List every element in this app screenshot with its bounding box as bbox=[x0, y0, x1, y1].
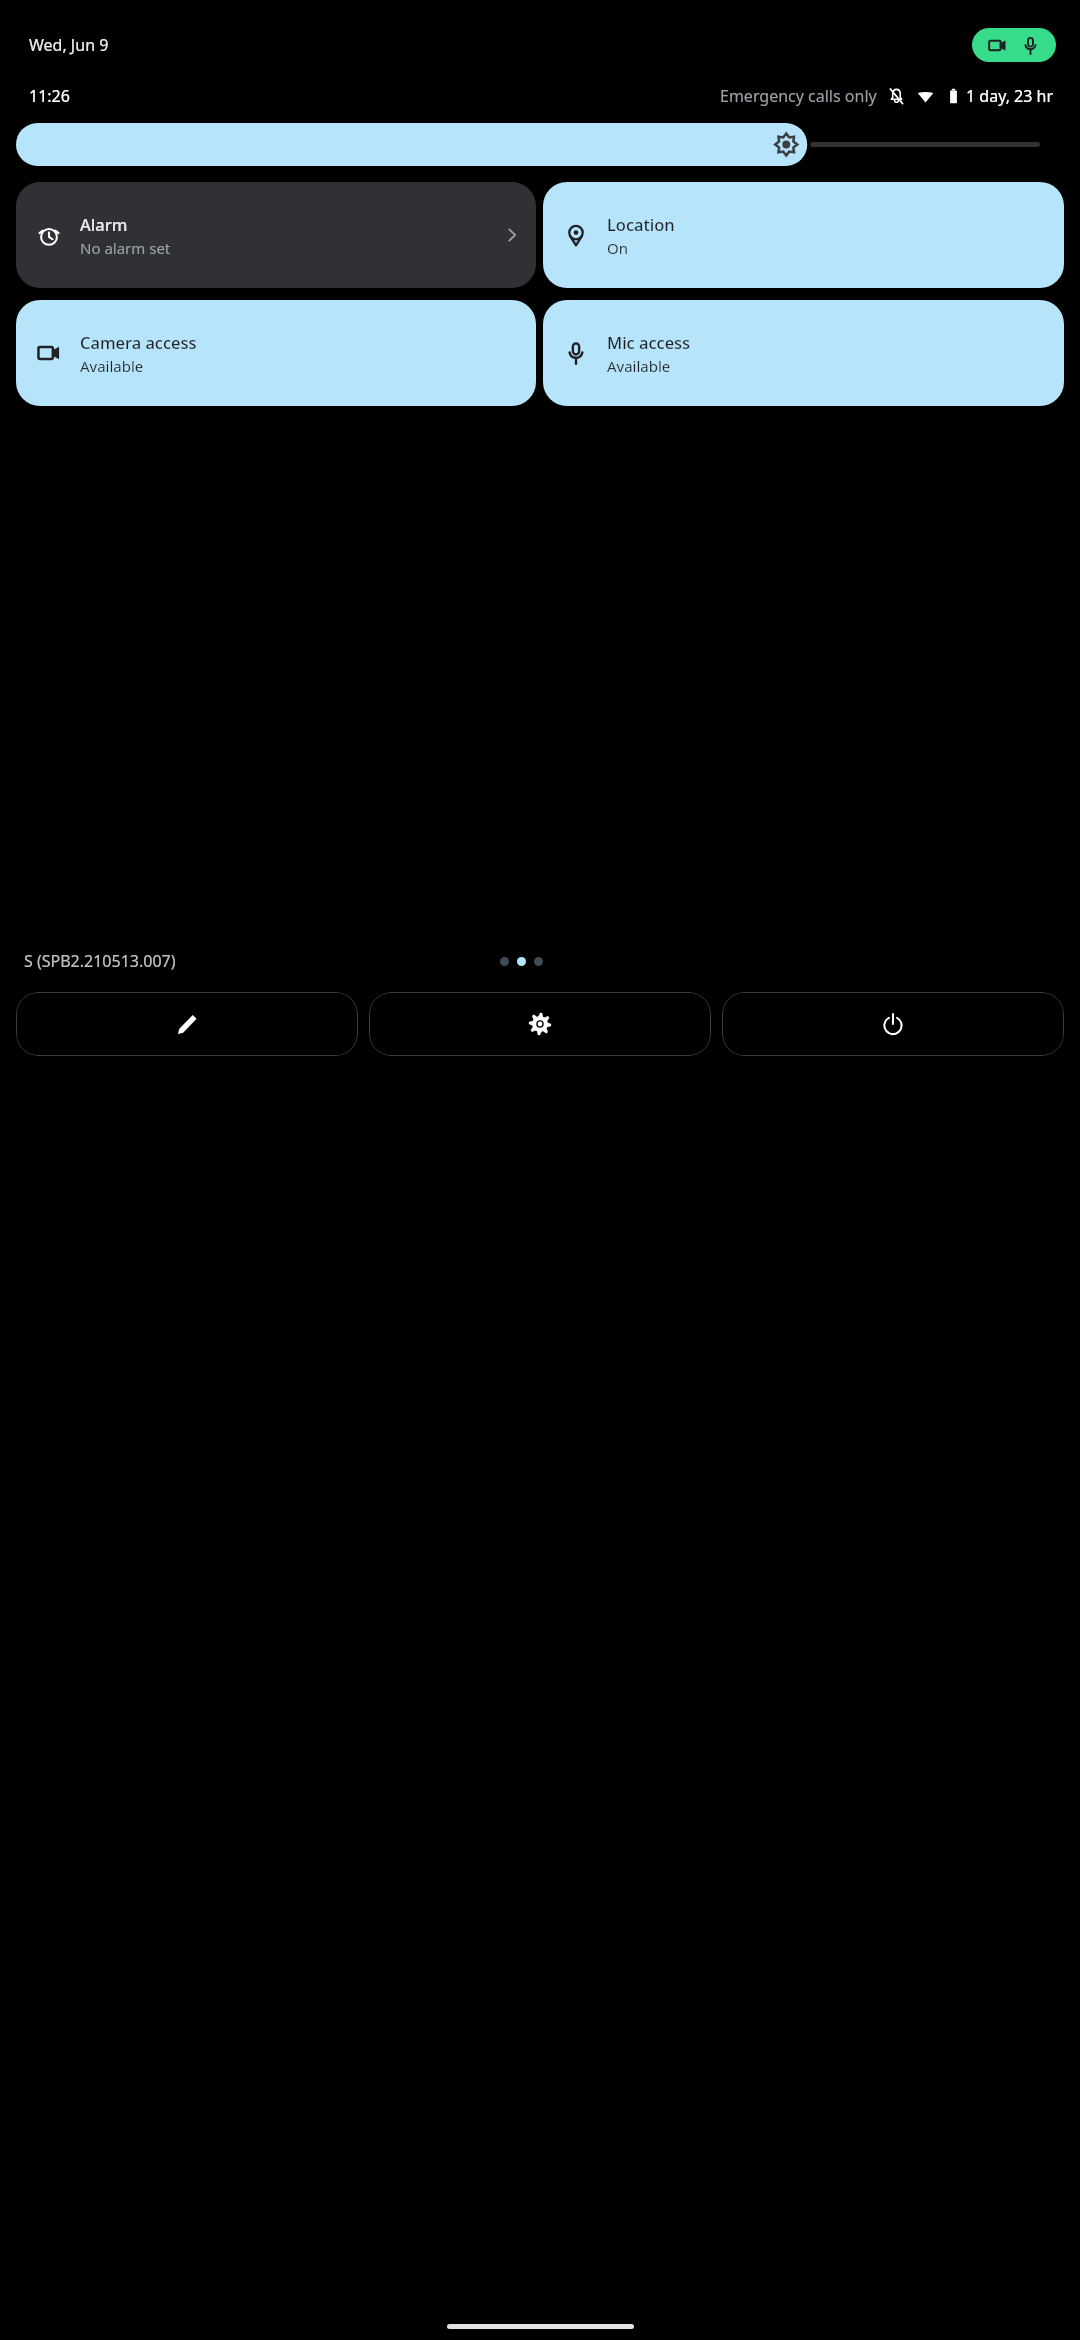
staticText: Alarm bbox=[80, 213, 128, 235]
staticText: No alarm set bbox=[80, 238, 171, 258]
button[interactable]: Camera access bbox=[16, 300, 536, 406]
staticText: 1 day, 23 hr bbox=[966, 85, 1054, 107]
button[interactable]: Power bbox=[722, 992, 1064, 1056]
button[interactable]: Camera and microphone active bbox=[972, 28, 1056, 62]
staticText: Available bbox=[607, 356, 671, 376]
button[interactable]: Alarm bbox=[16, 182, 536, 288]
staticText: 11:26 bbox=[29, 85, 70, 107]
button[interactable]: Location bbox=[543, 182, 1064, 288]
staticText: Emergency calls only bbox=[720, 85, 877, 107]
button[interactable]: Mic access bbox=[543, 300, 1064, 406]
staticText: S (SPB2.210513.007) bbox=[24, 950, 176, 972]
staticText: Mic access bbox=[607, 331, 691, 353]
staticText: Camera access bbox=[80, 331, 197, 353]
button[interactable]: Settings bbox=[369, 992, 711, 1056]
button[interactable]: Edit tiles bbox=[16, 992, 358, 1056]
staticText: Available bbox=[80, 356, 144, 376]
button[interactable]: Brightness bbox=[16, 123, 1064, 166]
staticText: On bbox=[607, 238, 628, 258]
staticText: Location bbox=[607, 213, 675, 235]
staticText: Wed, Jun 9 bbox=[29, 34, 109, 56]
